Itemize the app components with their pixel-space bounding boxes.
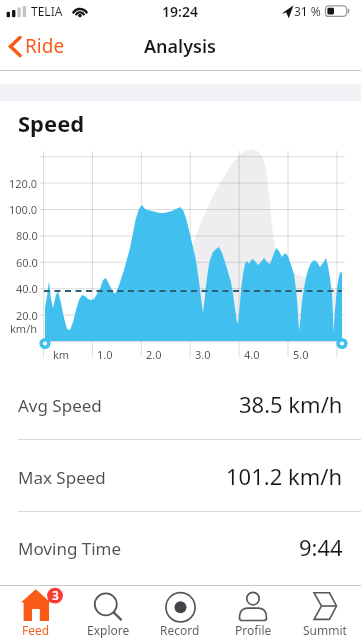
staticText: 31 % <box>294 3 321 19</box>
staticText: Speed <box>18 108 85 138</box>
staticText: 60.0 <box>16 255 38 270</box>
staticText: 4.0 <box>244 347 260 362</box>
staticText: 100.0 <box>9 202 38 217</box>
staticText: 5.0 <box>293 347 309 362</box>
staticText: 19:24 <box>162 2 198 21</box>
staticText: 9:44 <box>299 532 343 562</box>
staticText: 3.0 <box>195 347 211 362</box>
staticText: 3 <box>52 587 59 603</box>
staticText: Feed <box>22 622 50 638</box>
staticText: TELIA <box>31 3 63 19</box>
staticText: Analysis <box>144 34 216 59</box>
staticText: 101.2 km/h <box>226 461 343 491</box>
staticText: km <box>53 347 70 362</box>
staticText: 20.0 <box>16 308 38 323</box>
staticText: Moving Time <box>18 537 122 560</box>
staticText: Ride <box>25 33 65 59</box>
staticText: Max Speed <box>18 466 106 489</box>
staticText: km/h <box>10 321 38 336</box>
staticText: 40.0 <box>16 281 38 296</box>
staticText: Profile <box>235 622 272 638</box>
staticText: 80.0 <box>16 228 38 243</box>
staticText: Explore <box>87 622 130 638</box>
staticText: 1.0 <box>97 347 113 362</box>
staticText: Record <box>160 622 200 638</box>
staticText: Avg Speed <box>18 394 102 417</box>
staticText: Summit <box>303 622 347 638</box>
staticText: 120.0 <box>9 176 38 191</box>
staticText: 2.0 <box>146 347 162 362</box>
staticText: 38.5 km/h <box>239 389 343 419</box>
